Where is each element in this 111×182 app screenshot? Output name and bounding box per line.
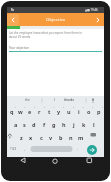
staticText: . (77, 146, 78, 151)
staticText: e (28, 108, 32, 115)
staticText: b (59, 134, 63, 141)
staticText: k (82, 121, 86, 128)
button[interactable]: b (56, 131, 66, 143)
staticText: I (54, 98, 56, 102)
staticText: j (73, 121, 75, 128)
staticText: d (32, 121, 36, 128)
staticText: , (24, 146, 25, 151)
staticText: r (38, 108, 41, 115)
staticText: v (49, 134, 53, 141)
staticText: thanks (64, 98, 75, 102)
staticText: o (87, 108, 91, 115)
staticText: ?123 (10, 147, 17, 151)
button[interactable]: i (74, 105, 84, 117)
staticText: h (62, 121, 66, 128)
staticText: Fu (11, 8, 14, 12)
button[interactable]: v (46, 131, 56, 143)
button[interactable]: l (89, 118, 99, 130)
staticText: n (69, 134, 73, 141)
button[interactable]: x (26, 131, 36, 143)
staticText: w (18, 108, 23, 115)
button[interactable]: c (36, 131, 46, 143)
staticText: Let the employee know what you expect fr… (9, 31, 82, 35)
staticText: p (97, 108, 101, 115)
staticText: u (67, 108, 71, 115)
staticText: about 25 words. (9, 35, 31, 39)
button[interactable]: g (49, 118, 59, 130)
button[interactable]: y (54, 105, 64, 117)
button[interactable]: q (7, 105, 16, 117)
staticText: l (93, 121, 95, 128)
button[interactable]: k (79, 118, 89, 130)
staticText: the (25, 98, 30, 102)
button[interactable]: a (11, 118, 20, 130)
button[interactable]: m (76, 131, 86, 143)
button[interactable] (7, 14, 19, 26)
button[interactable]: w (16, 105, 25, 117)
button[interactable]: o (84, 105, 94, 117)
staticText: i (78, 108, 80, 115)
button[interactable] (92, 14, 104, 26)
staticText: s (23, 121, 26, 128)
button[interactable]: p (94, 105, 104, 117)
staticText: Objective (46, 17, 66, 23)
staticText: x (29, 134, 33, 141)
button[interactable] (87, 145, 97, 155)
staticText: Your objective (9, 46, 29, 50)
staticText: q (10, 108, 14, 115)
button[interactable]: j (69, 118, 79, 130)
button[interactable]: u (64, 105, 74, 117)
staticText: ▲■ 19:46 (85, 8, 98, 12)
staticText: m (78, 134, 84, 141)
staticText: g (52, 121, 56, 128)
staticText: z (20, 134, 23, 141)
button[interactable]: d (29, 118, 39, 130)
button[interactable]: s (20, 118, 29, 130)
button[interactable]: h (59, 118, 69, 130)
staticText: y (57, 108, 61, 115)
staticText: f (43, 121, 46, 128)
button[interactable]: z (16, 131, 26, 143)
button[interactable]: r (34, 105, 44, 117)
button[interactable]: n (66, 131, 76, 143)
button[interactable]: f (39, 118, 49, 130)
button[interactable]: e (25, 105, 34, 117)
staticText: a (14, 121, 18, 128)
button[interactable]: t (44, 105, 54, 117)
staticText: c (40, 134, 43, 141)
staticText: t (48, 108, 51, 115)
